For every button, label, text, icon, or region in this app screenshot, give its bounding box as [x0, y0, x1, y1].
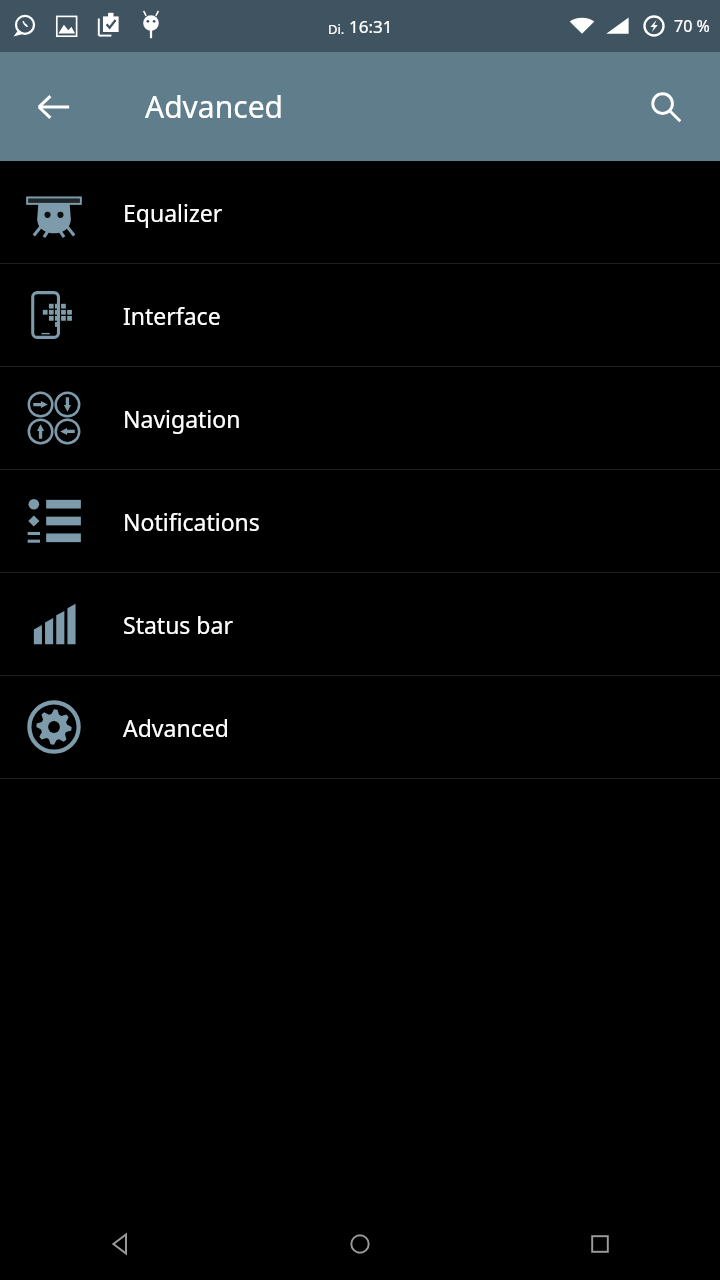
- staticText: 70 %: [674, 15, 710, 37]
- staticText: Notifications: [123, 506, 260, 537]
- button[interactable]: Interface: [0, 264, 720, 366]
- button[interactable]: Home: [240, 1208, 480, 1280]
- button[interactable]: Equalizer: [0, 161, 720, 263]
- staticText: Status bar: [123, 609, 233, 640]
- staticText: 16:31: [349, 15, 393, 38]
- staticText: Advanced: [123, 712, 229, 743]
- staticText: Equalizer: [123, 197, 223, 228]
- button[interactable]: Back: [18, 71, 90, 143]
- button[interactable]: Status bar: [0, 573, 720, 675]
- button[interactable]: Search: [630, 71, 702, 143]
- button[interactable]: Advanced: [0, 676, 720, 778]
- button[interactable]: Recents: [480, 1208, 720, 1280]
- button[interactable]: Notifications: [0, 470, 720, 572]
- button[interactable]: Back: [0, 1208, 240, 1280]
- staticText: Navigation: [123, 403, 241, 434]
- staticText: Interface: [123, 300, 221, 331]
- button[interactable]: Navigation: [0, 367, 720, 469]
- staticText: Di.: [328, 20, 345, 38]
- staticText: Advanced: [145, 86, 283, 127]
